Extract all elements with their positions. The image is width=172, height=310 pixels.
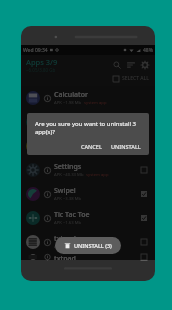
button[interactable]: txtpad	[21, 254, 155, 260]
staticText: Are you sure you want to uninstall 3 app…	[35, 120, 144, 136]
staticText: system app	[84, 124, 107, 130]
staticText: APK ~1.42 Mb	[54, 148, 82, 154]
staticText: txtpad	[54, 234, 76, 244]
staticText: ~6.05/3.80 Gb	[26, 67, 56, 73]
button[interactable]: MelonScore	[21, 134, 155, 158]
button[interactable]: SELECT ALL	[112, 74, 150, 83]
button[interactable]: UNINSTALL	[108, 141, 144, 152]
staticText: Files	[54, 114, 69, 124]
staticText: Settings	[54, 162, 82, 172]
staticText: Apps 3/9	[26, 57, 58, 67]
button[interactable]: Settings	[138, 58, 152, 72]
staticText: Tic Tac Toe	[54, 210, 90, 220]
button[interactable]: Settings	[21, 158, 155, 182]
button[interactable]: Swipel	[21, 182, 155, 206]
staticText: UNINSTALL	[111, 143, 141, 150]
staticText: APK ~40.33 Mb	[54, 172, 84, 178]
button[interactable]: Select txtpad	[138, 254, 150, 260]
staticText: UNINSTALL (3)	[74, 242, 112, 249]
button[interactable]: Files	[21, 110, 155, 134]
button[interactable]: Select Tic Tac Toe	[138, 212, 150, 224]
staticText: Calculator	[54, 90, 88, 100]
button[interactable]: UNINSTALL (3)	[55, 237, 121, 254]
staticText: APK ~2.1 Mb	[54, 244, 79, 250]
staticText: txtpad	[54, 254, 76, 260]
staticText: system app	[86, 172, 109, 178]
staticText: system app	[84, 100, 107, 106]
button[interactable]: Select MelonScore	[138, 140, 150, 152]
staticText: MelonScore	[54, 138, 94, 148]
staticText: CANCEL	[81, 143, 102, 150]
button[interactable]: Search	[110, 58, 124, 72]
staticText: APK ~3.38 Mb	[54, 196, 82, 202]
staticText: SELECT ALL	[122, 75, 149, 82]
button[interactable]: CANCEL	[78, 141, 105, 152]
staticText: APK ~1.63 Mb	[54, 220, 82, 226]
button[interactable]: Select Settings	[138, 164, 150, 176]
button[interactable]: Select txtpad	[138, 236, 150, 248]
staticText: APK ~1.98 Mb	[54, 100, 82, 106]
staticText: 48%	[143, 47, 153, 54]
button[interactable]: Select Swipel	[138, 188, 150, 200]
button[interactable]: txtpad	[21, 230, 155, 254]
staticText: APK ~2.26 Mb	[54, 124, 82, 130]
staticText: Wed 09:34	[23, 47, 48, 54]
staticText: Swipel	[54, 186, 76, 196]
button[interactable]: Tic Tac Toe	[21, 206, 155, 230]
button[interactable]: Calculator	[21, 86, 155, 110]
button[interactable]: Sort	[124, 58, 138, 72]
